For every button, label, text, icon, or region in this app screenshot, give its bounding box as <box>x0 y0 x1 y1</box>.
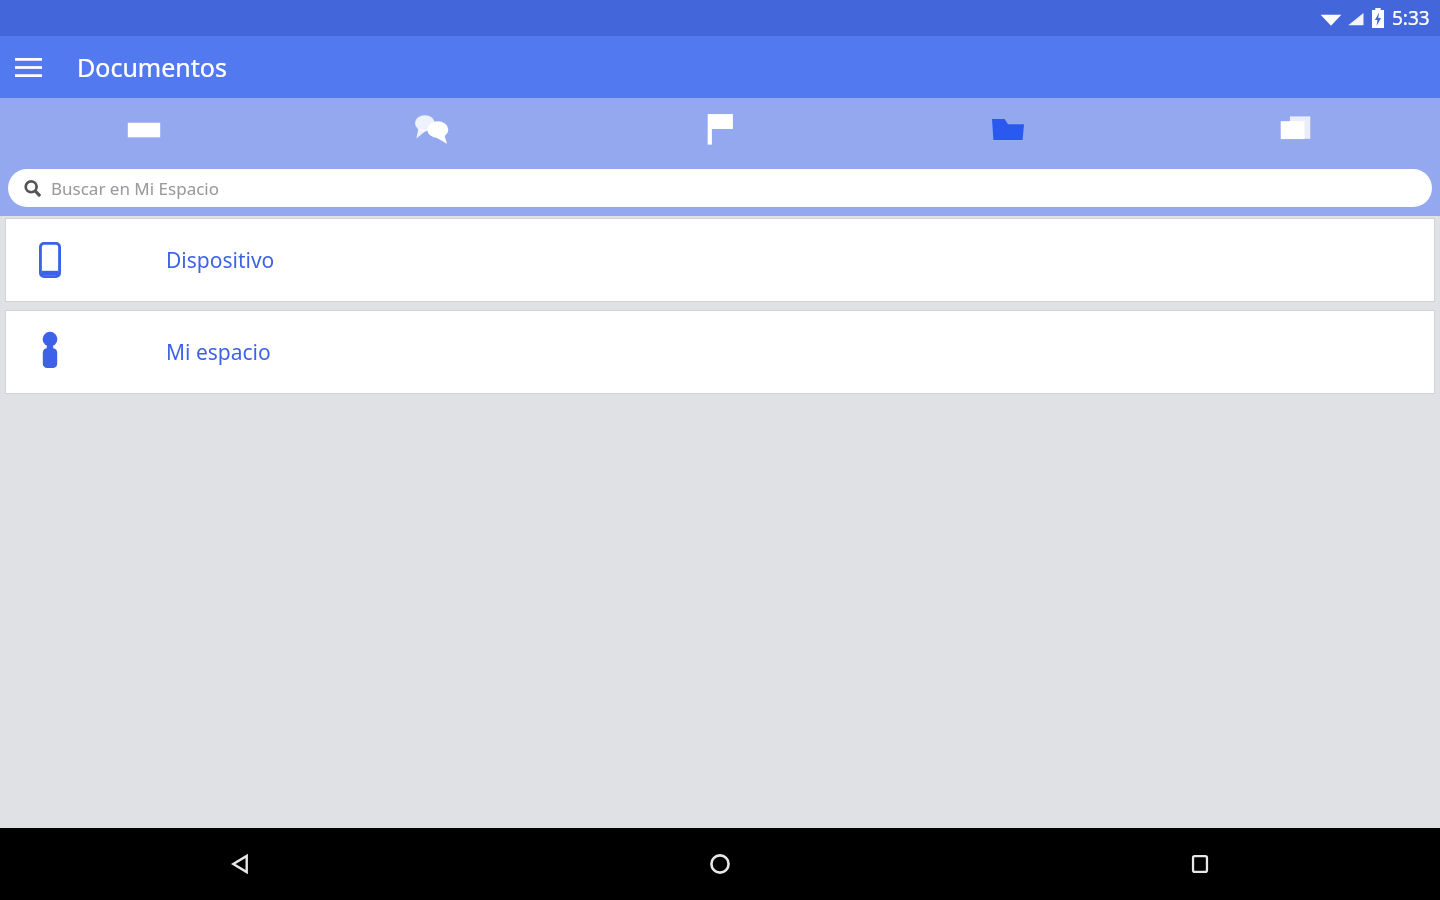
button[interactable]: Open navigation menu <box>5 44 51 90</box>
button[interactable]: Documents <box>864 98 1152 160</box>
staticText: 5:33 <box>1392 5 1430 31</box>
staticText: Documentos <box>77 50 227 84</box>
button[interactable]: Inbox <box>0 98 288 160</box>
button[interactable]: Contacts <box>1152 98 1440 160</box>
staticText: Dispositivo <box>166 246 275 275</box>
staticText: Buscar en Mi Espacio <box>51 177 219 200</box>
staticText: Mi espacio <box>166 338 271 367</box>
button[interactable]: Dispositivo <box>6 219 1434 301</box>
button[interactable]: Mi espacio <box>6 311 1434 393</box>
button[interactable]: Chats <box>288 98 576 160</box>
button[interactable]: Home <box>480 828 960 900</box>
button[interactable]: Flagged <box>576 98 864 160</box>
button[interactable]: Back <box>0 828 480 900</box>
button[interactable]: Buscar en Mi Espacio <box>8 169 1432 207</box>
button[interactable]: Recent apps <box>960 828 1440 900</box>
